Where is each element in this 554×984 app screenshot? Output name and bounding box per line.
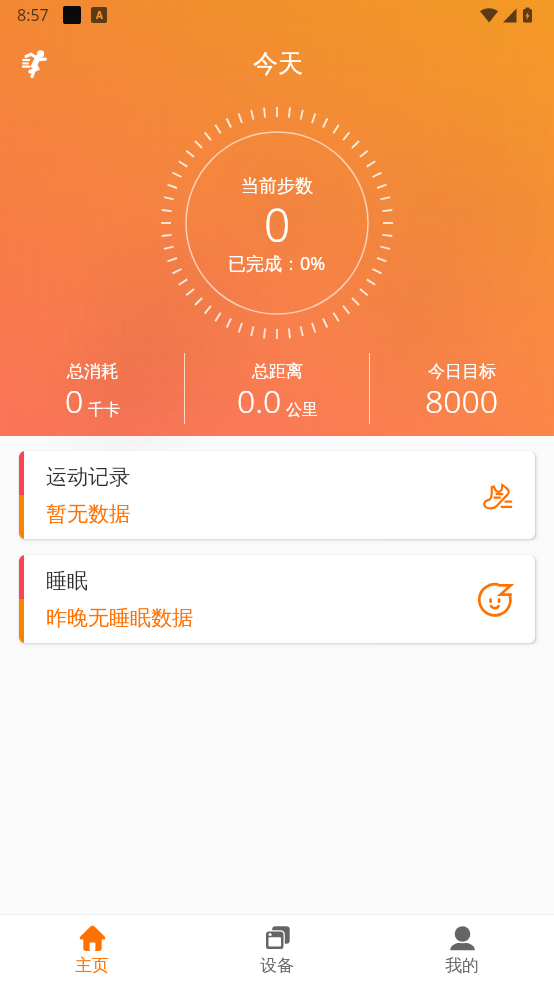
- staticText: 已完成：0%: [228, 251, 326, 276]
- staticText: 千卡: [88, 400, 120, 420]
- button[interactable]: 设备: [184, 915, 369, 984]
- staticText: 主页: [75, 955, 109, 976]
- button[interactable]: 我的: [369, 915, 554, 984]
- staticText: 今日目标: [428, 361, 496, 382]
- button[interactable]: 睡眠: [19, 555, 535, 643]
- staticText: 8:57: [17, 4, 49, 26]
- staticText: 总距离: [252, 361, 303, 382]
- staticText: 我的: [445, 955, 479, 976]
- button[interactable]: 运动记录: [19, 451, 535, 539]
- staticText: 今天: [253, 48, 303, 79]
- staticText: 设备: [260, 955, 294, 976]
- button[interactable]: 主页: [0, 915, 184, 984]
- button[interactable]: Activity: [12, 41, 56, 85]
- staticText: 公里: [286, 400, 318, 420]
- staticText: 0: [65, 379, 84, 423]
- staticText: 暂无数据: [46, 501, 130, 527]
- staticText: 0.0: [237, 379, 282, 423]
- staticText: 运动记录: [46, 464, 130, 490]
- staticText: A: [96, 8, 103, 22]
- staticText: 8000: [425, 379, 499, 423]
- staticText: 当前步数: [241, 175, 313, 198]
- staticText: 总消耗: [67, 361, 118, 382]
- staticText: 昨晚无睡眠数据: [46, 605, 193, 631]
- staticText: 0: [264, 193, 291, 256]
- staticText: 睡眠: [46, 568, 88, 594]
